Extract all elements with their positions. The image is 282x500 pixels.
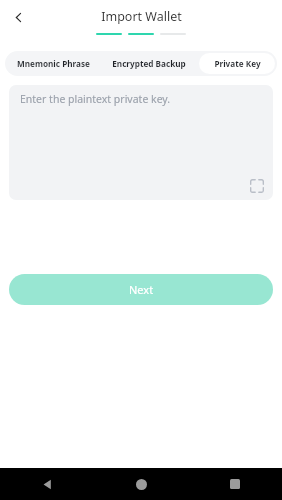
button[interactable]: Recent apps xyxy=(188,468,282,500)
staticText: Mnemonic Phrase xyxy=(17,58,90,69)
button[interactable]: Enter the plaintext private key. xyxy=(9,85,273,200)
button[interactable]: Next xyxy=(9,274,273,305)
button[interactable]: Back xyxy=(5,4,31,30)
staticText: Next xyxy=(129,282,154,297)
button[interactable]: Home xyxy=(94,468,188,500)
button[interactable]: Encrypted Backup xyxy=(103,53,195,74)
button[interactable]: Mnemonic Phrase xyxy=(7,53,99,74)
staticText: Encrypted Backup xyxy=(112,58,186,69)
staticText: Private Key xyxy=(214,58,261,69)
staticText: Enter the plaintext private key. xyxy=(20,92,171,106)
button[interactable]: Private Key xyxy=(199,53,275,74)
button[interactable]: Back xyxy=(0,468,94,500)
button[interactable]: Scan QR code xyxy=(248,177,266,195)
staticText: Import Wallet xyxy=(101,8,182,25)
